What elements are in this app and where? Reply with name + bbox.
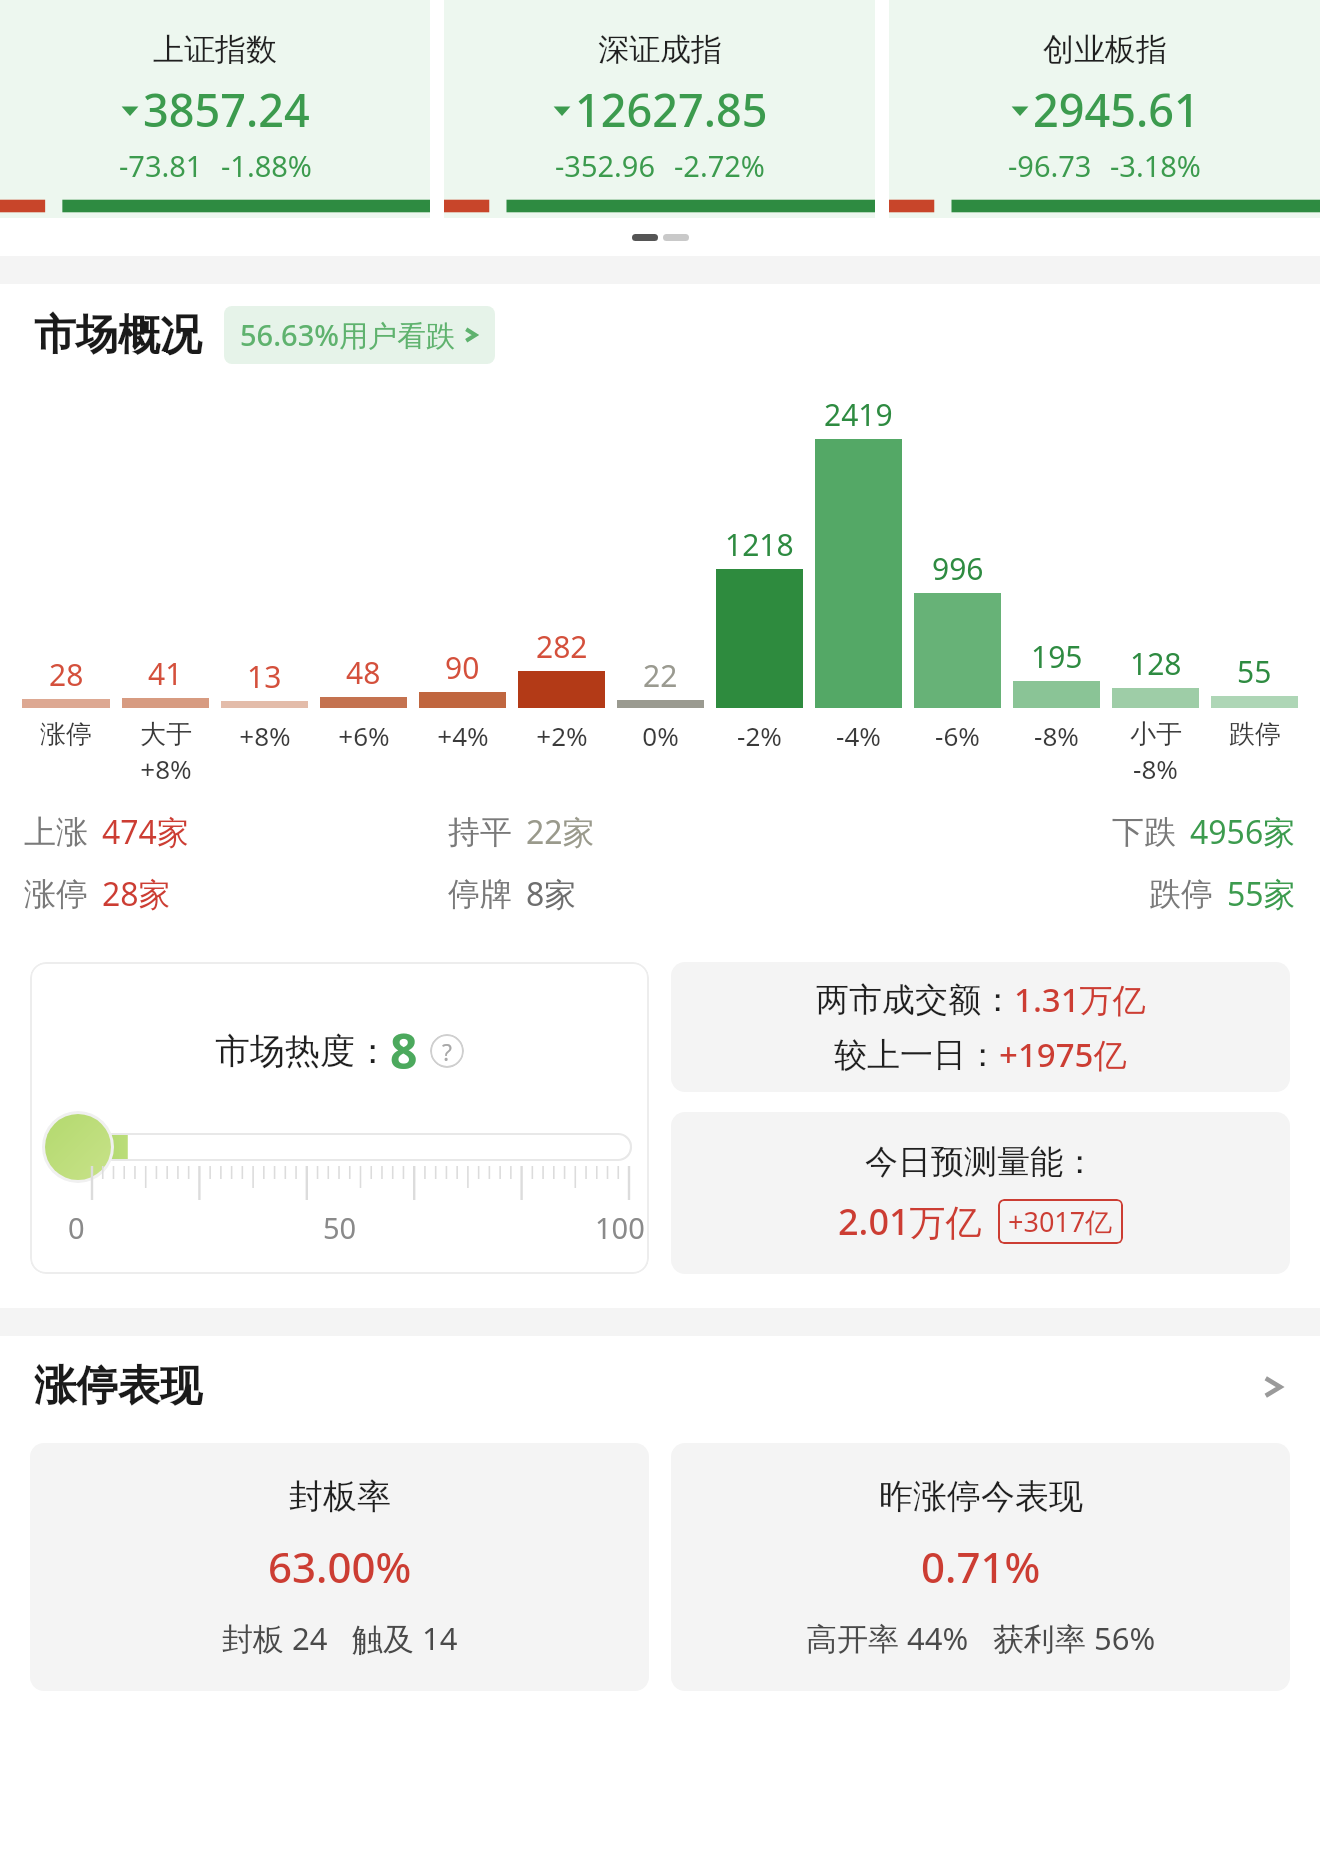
staticText: 较上一日： bbox=[834, 1034, 999, 1076]
staticText: 50 bbox=[323, 1208, 357, 1247]
staticText: 3857.24 bbox=[143, 79, 310, 140]
other: 更多 bbox=[1260, 1367, 1286, 1407]
staticText: 4956家 bbox=[1190, 810, 1296, 854]
button[interactable]: 今日预测量能： bbox=[671, 1112, 1290, 1274]
button[interactable]: 市场热度： bbox=[30, 962, 649, 1274]
staticText: 63.00% bbox=[268, 1538, 412, 1595]
staticText: 上证指数 bbox=[153, 30, 277, 69]
staticText: 28 bbox=[49, 654, 84, 695]
staticText: 跌停 bbox=[1149, 874, 1213, 914]
staticText: 474家 bbox=[102, 810, 189, 854]
staticText: 1218 bbox=[725, 524, 794, 565]
staticText: -96.73 bbox=[1008, 146, 1092, 185]
button[interactable]: 涨停表现 bbox=[0, 1360, 1320, 1413]
staticText: -8% bbox=[1034, 718, 1079, 753]
staticText: 55 bbox=[1237, 651, 1272, 692]
button[interactable]: 封板率 bbox=[30, 1443, 649, 1691]
staticText: +6% bbox=[338, 718, 390, 753]
staticText: 两市成交额： bbox=[816, 979, 1014, 1021]
staticText: 0.71% bbox=[921, 1538, 1041, 1595]
staticText: 22家 bbox=[526, 810, 595, 854]
staticText: 2945.61 bbox=[1033, 79, 1200, 140]
staticText: 小于 bbox=[1130, 718, 1182, 751]
staticText: 28家 bbox=[102, 872, 171, 916]
button[interactable]: 两市成交额： bbox=[671, 962, 1290, 1092]
staticText: 0% bbox=[642, 718, 679, 753]
staticText: 涨停表现 bbox=[34, 1360, 202, 1413]
staticText: 触及 14 bbox=[352, 1617, 458, 1659]
staticText: -3.18% bbox=[1110, 146, 1201, 185]
staticText: 1.31万亿 bbox=[1014, 977, 1146, 1022]
staticText: 今日预测量能： bbox=[865, 1141, 1096, 1183]
staticText: 停牌 bbox=[448, 874, 512, 914]
staticText: 8家 bbox=[526, 872, 577, 916]
staticText: 90 bbox=[445, 647, 480, 688]
staticText: +1975亿 bbox=[999, 1032, 1127, 1077]
staticText: 高开率 44% bbox=[806, 1617, 969, 1659]
staticText: 深证成指 bbox=[598, 30, 722, 69]
staticText: +2% bbox=[536, 718, 588, 753]
staticText: 持平 bbox=[448, 812, 512, 852]
staticText: 195 bbox=[1031, 636, 1083, 677]
staticText: 0 bbox=[68, 1208, 85, 1247]
staticText: 创业板指 bbox=[1043, 30, 1167, 69]
staticText: -2.72% bbox=[674, 146, 765, 185]
staticText: 8 bbox=[390, 1018, 418, 1083]
staticText: -2% bbox=[737, 718, 782, 753]
staticText: 13 bbox=[247, 656, 282, 697]
staticText: +8% bbox=[239, 718, 291, 753]
staticText: -73.81 bbox=[119, 146, 203, 185]
staticText: 涨停 bbox=[24, 874, 88, 914]
staticText: -8% bbox=[1133, 751, 1178, 786]
staticText: 下跌 bbox=[1112, 812, 1176, 852]
staticText: 封板率 bbox=[289, 1475, 391, 1518]
staticText: ? bbox=[442, 1036, 452, 1067]
staticText: 上涨 bbox=[24, 812, 88, 852]
staticText: 2419 bbox=[824, 394, 893, 435]
staticText: 48 bbox=[346, 652, 381, 693]
staticText: -1.88% bbox=[221, 146, 312, 185]
staticText: -4% bbox=[836, 718, 881, 753]
staticText: 12627.85 bbox=[575, 79, 768, 140]
staticText: 996 bbox=[932, 548, 984, 589]
staticText: +4% bbox=[437, 718, 489, 753]
staticText: 41 bbox=[148, 653, 183, 694]
button[interactable]: 上证指数 bbox=[0, 0, 430, 218]
button[interactable]: 56.63%用户看跌 bbox=[224, 306, 495, 364]
staticText: 55家 bbox=[1227, 872, 1296, 916]
staticText: 56.63%用户看跌 bbox=[240, 315, 455, 355]
staticText: 282 bbox=[536, 626, 588, 667]
staticText: 100 bbox=[595, 1208, 645, 1247]
button[interactable]: 说明 bbox=[430, 1034, 464, 1068]
staticText: 封板 24 bbox=[222, 1617, 328, 1659]
staticText: +3017亿 bbox=[1008, 1203, 1113, 1240]
button[interactable]: 深证成指 bbox=[444, 0, 875, 218]
staticText: -352.96 bbox=[555, 146, 656, 185]
staticText: 跌停 bbox=[1229, 718, 1281, 751]
staticText: -6% bbox=[935, 718, 980, 753]
staticText: 市场概况 bbox=[34, 309, 202, 362]
staticText: 昨涨停今表现 bbox=[879, 1475, 1083, 1518]
button[interactable]: 昨涨停今表现 bbox=[671, 1443, 1290, 1691]
staticText: 22 bbox=[643, 655, 678, 696]
button[interactable]: 创业板指 bbox=[889, 0, 1320, 218]
staticText: 大于 bbox=[140, 718, 192, 751]
staticText: 市场热度： bbox=[215, 1029, 390, 1073]
staticText: +8% bbox=[140, 751, 192, 786]
staticText: 涨停 bbox=[40, 718, 92, 751]
staticText: 128 bbox=[1130, 643, 1182, 684]
staticText: 2.01万亿 bbox=[838, 1197, 982, 1246]
staticText: 获利率 56% bbox=[993, 1617, 1156, 1659]
